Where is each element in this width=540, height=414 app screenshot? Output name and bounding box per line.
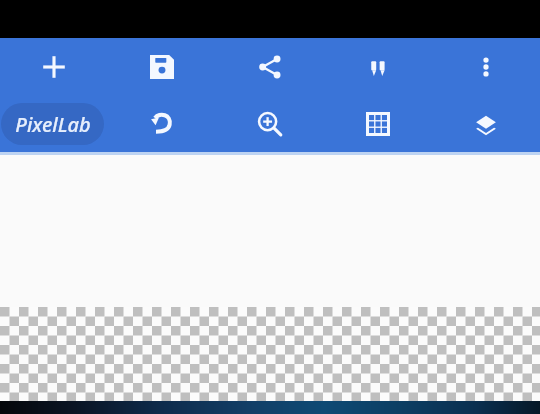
button[interactable]: PixelLab <box>1 103 104 145</box>
button[interactable]: Add <box>0 38 108 95</box>
button[interactable]: Undo <box>108 95 216 152</box>
button[interactable]: Layers <box>432 95 540 152</box>
staticText: PixelLab <box>15 111 91 138</box>
button[interactable]: More options <box>432 38 540 95</box>
button[interactable]: Save <box>108 38 216 95</box>
button[interactable]: Share <box>216 38 324 95</box>
button[interactable]: Add text <box>324 38 432 95</box>
button[interactable]: Zoom in <box>216 95 324 152</box>
button[interactable]: Grid <box>324 95 432 152</box>
